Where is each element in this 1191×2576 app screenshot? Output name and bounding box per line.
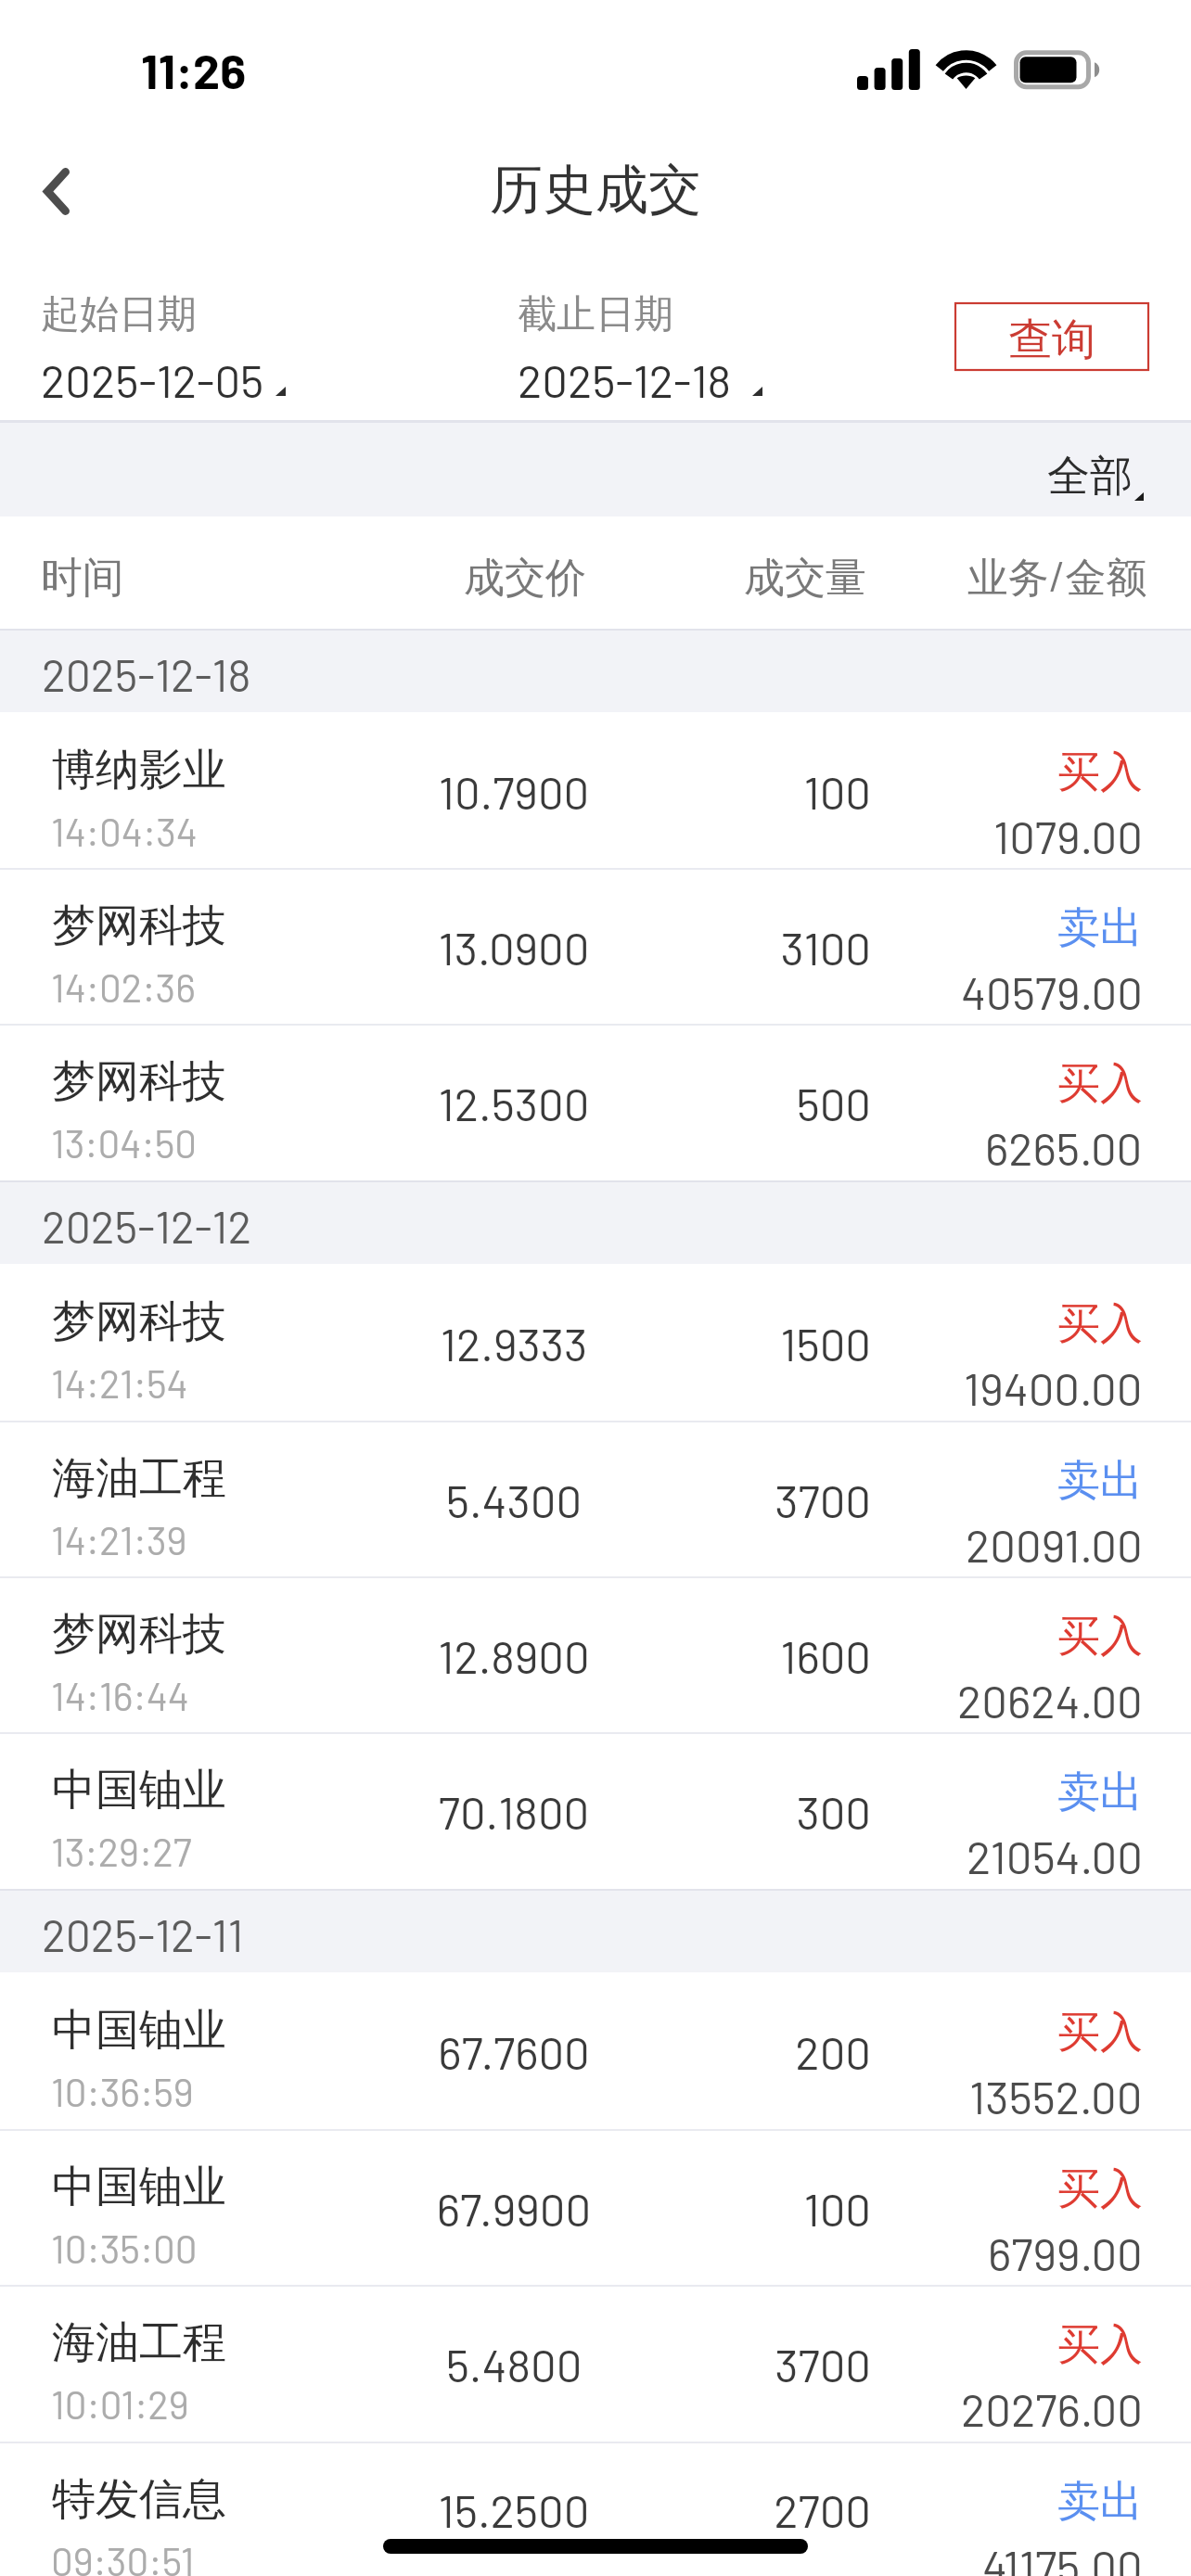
staticText: 14:21:39 <box>51 1516 187 1562</box>
staticText: 卖出 <box>1057 2475 1143 2529</box>
staticText: 买入 <box>1057 1610 1143 1664</box>
staticText: 买入 <box>1057 2162 1143 2216</box>
staticText: 卖出 <box>1057 901 1143 955</box>
staticText: 海油工程 <box>52 1451 226 1506</box>
staticText: 业务/金额 <box>967 551 1147 604</box>
staticText: 特发信息 <box>52 2472 226 2527</box>
staticText: 14:02:36 <box>51 963 196 1010</box>
staticText: 09:30:51 <box>51 2537 195 2576</box>
staticText: 1079.00 <box>993 809 1143 863</box>
staticText: 海油工程 <box>52 2315 226 2370</box>
staticText: 卖出 <box>1057 1766 1143 1819</box>
staticText: 12.5300 <box>412 1076 616 1130</box>
staticText: 40579.00 <box>961 964 1143 1019</box>
staticText: 梦网科技 <box>52 1054 226 1109</box>
button[interactable]: 2025-12-18 <box>518 352 768 417</box>
staticText: 买入 <box>1057 2006 1143 2060</box>
staticText: 13.0900 <box>412 920 616 975</box>
button[interactable]: 梦网科技 <box>0 1024 1191 1180</box>
staticText: 2025-12-12 <box>42 1199 252 1253</box>
button[interactable]: 查询 <box>954 302 1149 371</box>
staticText: 梦网科技 <box>52 899 226 953</box>
staticText: 1500 <box>664 1316 871 1371</box>
staticText: 10:35:00 <box>51 2225 198 2271</box>
staticText: 41175.00 <box>982 2538 1143 2576</box>
staticText: 2025-12-18 <box>42 647 251 701</box>
staticText: 卖出 <box>1057 1454 1143 1508</box>
button[interactable]: 梦网科技 <box>0 1264 1191 1421</box>
staticText: 时间 <box>41 552 124 605</box>
staticText: 2025-12-11 <box>42 1907 244 1961</box>
staticText: 5.4800 <box>412 2337 616 2391</box>
staticText: 13:29:27 <box>51 1828 192 1874</box>
staticText: 6799.00 <box>988 2225 1143 2280</box>
button[interactable]: 海油工程 <box>0 2285 1191 2442</box>
staticText: 历史成交 <box>490 157 701 223</box>
staticText: 13:04:50 <box>51 1119 197 1166</box>
button[interactable]: 梦网科技 <box>0 868 1191 1024</box>
button[interactable]: Back <box>0 131 113 253</box>
staticText: 100 <box>664 764 871 819</box>
staticText: 15.2500 <box>412 2482 616 2537</box>
staticText: 5.4300 <box>412 1473 616 1527</box>
staticText: 67.7600 <box>412 2024 616 2079</box>
staticText: 300 <box>664 1784 871 1839</box>
staticText: 2025-12-05 <box>41 352 264 407</box>
staticText: 起始日期 <box>41 290 197 339</box>
staticText: 14:21:54 <box>51 1359 188 1406</box>
button[interactable]: 中国铀业 <box>0 2129 1191 2285</box>
staticText: 2025-12-18 <box>518 352 732 407</box>
staticText: 12.8900 <box>412 1628 616 1683</box>
staticText: 中国铀业 <box>52 1763 226 1817</box>
staticText: 10.7900 <box>412 764 616 819</box>
staticText: 10:01:29 <box>51 2380 189 2427</box>
staticText: 10:36:59 <box>51 2068 194 2114</box>
staticText: 买入 <box>1057 2318 1143 2372</box>
staticText: 中国铀业 <box>52 2003 226 2058</box>
staticText: 成交量 <box>703 553 907 604</box>
staticText: 70.1800 <box>412 1784 616 1839</box>
staticText: 截止日期 <box>518 290 673 339</box>
button[interactable]: 中国铀业 <box>0 1972 1191 2129</box>
staticText: 买入 <box>1057 746 1143 799</box>
staticText: 200 <box>664 2024 871 2079</box>
button[interactable]: 全部 <box>1047 450 1144 504</box>
staticText: 博纳影业 <box>52 743 226 797</box>
staticText: 中国铀业 <box>52 2160 226 2214</box>
staticText: 19400.00 <box>964 1360 1143 1415</box>
staticText: 20276.00 <box>961 2381 1143 2436</box>
staticText: 500 <box>664 1076 871 1130</box>
staticText: 13552.00 <box>969 2069 1143 2123</box>
button[interactable]: 中国铀业 <box>0 1732 1191 1889</box>
staticText: 梦网科技 <box>52 1607 226 1662</box>
staticText: 14:16:44 <box>51 1672 189 1718</box>
staticText: 买入 <box>1057 1057 1143 1111</box>
staticText: 12.9333 <box>412 1316 616 1371</box>
staticText: 查询 <box>1008 312 1095 367</box>
button[interactable]: 梦网科技 <box>0 1576 1191 1732</box>
staticText: 2700 <box>664 2482 871 2537</box>
staticText: 100 <box>664 2181 871 2236</box>
staticText: 买入 <box>1057 1297 1143 1351</box>
button[interactable]: 博纳影业 <box>0 712 1191 868</box>
button[interactable]: 特发信息 <box>0 2442 1191 2576</box>
staticText: 14:04:34 <box>51 808 198 854</box>
staticText: 全部 <box>1047 450 1133 504</box>
staticText: 67.9900 <box>412 2181 616 2236</box>
staticText: 3100 <box>664 920 871 975</box>
staticText: 20624.00 <box>957 1673 1143 1728</box>
staticText: 1600 <box>664 1628 871 1683</box>
staticText: 3700 <box>664 1473 871 1527</box>
staticText: 11:26 <box>141 41 247 98</box>
staticText: 3700 <box>664 2337 871 2391</box>
staticText: 梦网科技 <box>52 1294 226 1349</box>
button[interactable]: 2025-12-05 <box>41 352 291 417</box>
staticText: 成交价 <box>423 553 627 604</box>
staticText: 6265.00 <box>985 1120 1143 1175</box>
button[interactable]: 海油工程 <box>0 1421 1191 1576</box>
staticText: 21054.00 <box>967 1829 1143 1883</box>
staticText: 20091.00 <box>966 1517 1143 1572</box>
